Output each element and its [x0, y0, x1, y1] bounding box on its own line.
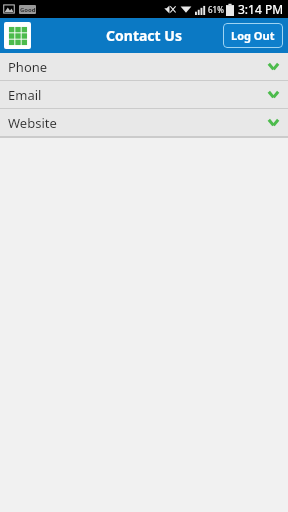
button[interactable]: Log Out	[223, 23, 283, 48]
staticText: Phone	[8, 58, 48, 76]
staticText: 61%	[208, 4, 224, 15]
button[interactable]: Apps menu	[4, 22, 31, 49]
staticText: Contact Us	[106, 26, 182, 45]
button[interactable]: Email	[0, 81, 288, 108]
staticText: Good	[20, 6, 36, 14]
staticText: Website	[8, 114, 57, 132]
button[interactable]: Phone	[0, 53, 288, 80]
staticText: 3:14 PM	[238, 1, 284, 17]
staticText: Log Out	[231, 28, 275, 43]
staticText: Email	[8, 86, 42, 104]
button[interactable]: Website	[0, 109, 288, 136]
